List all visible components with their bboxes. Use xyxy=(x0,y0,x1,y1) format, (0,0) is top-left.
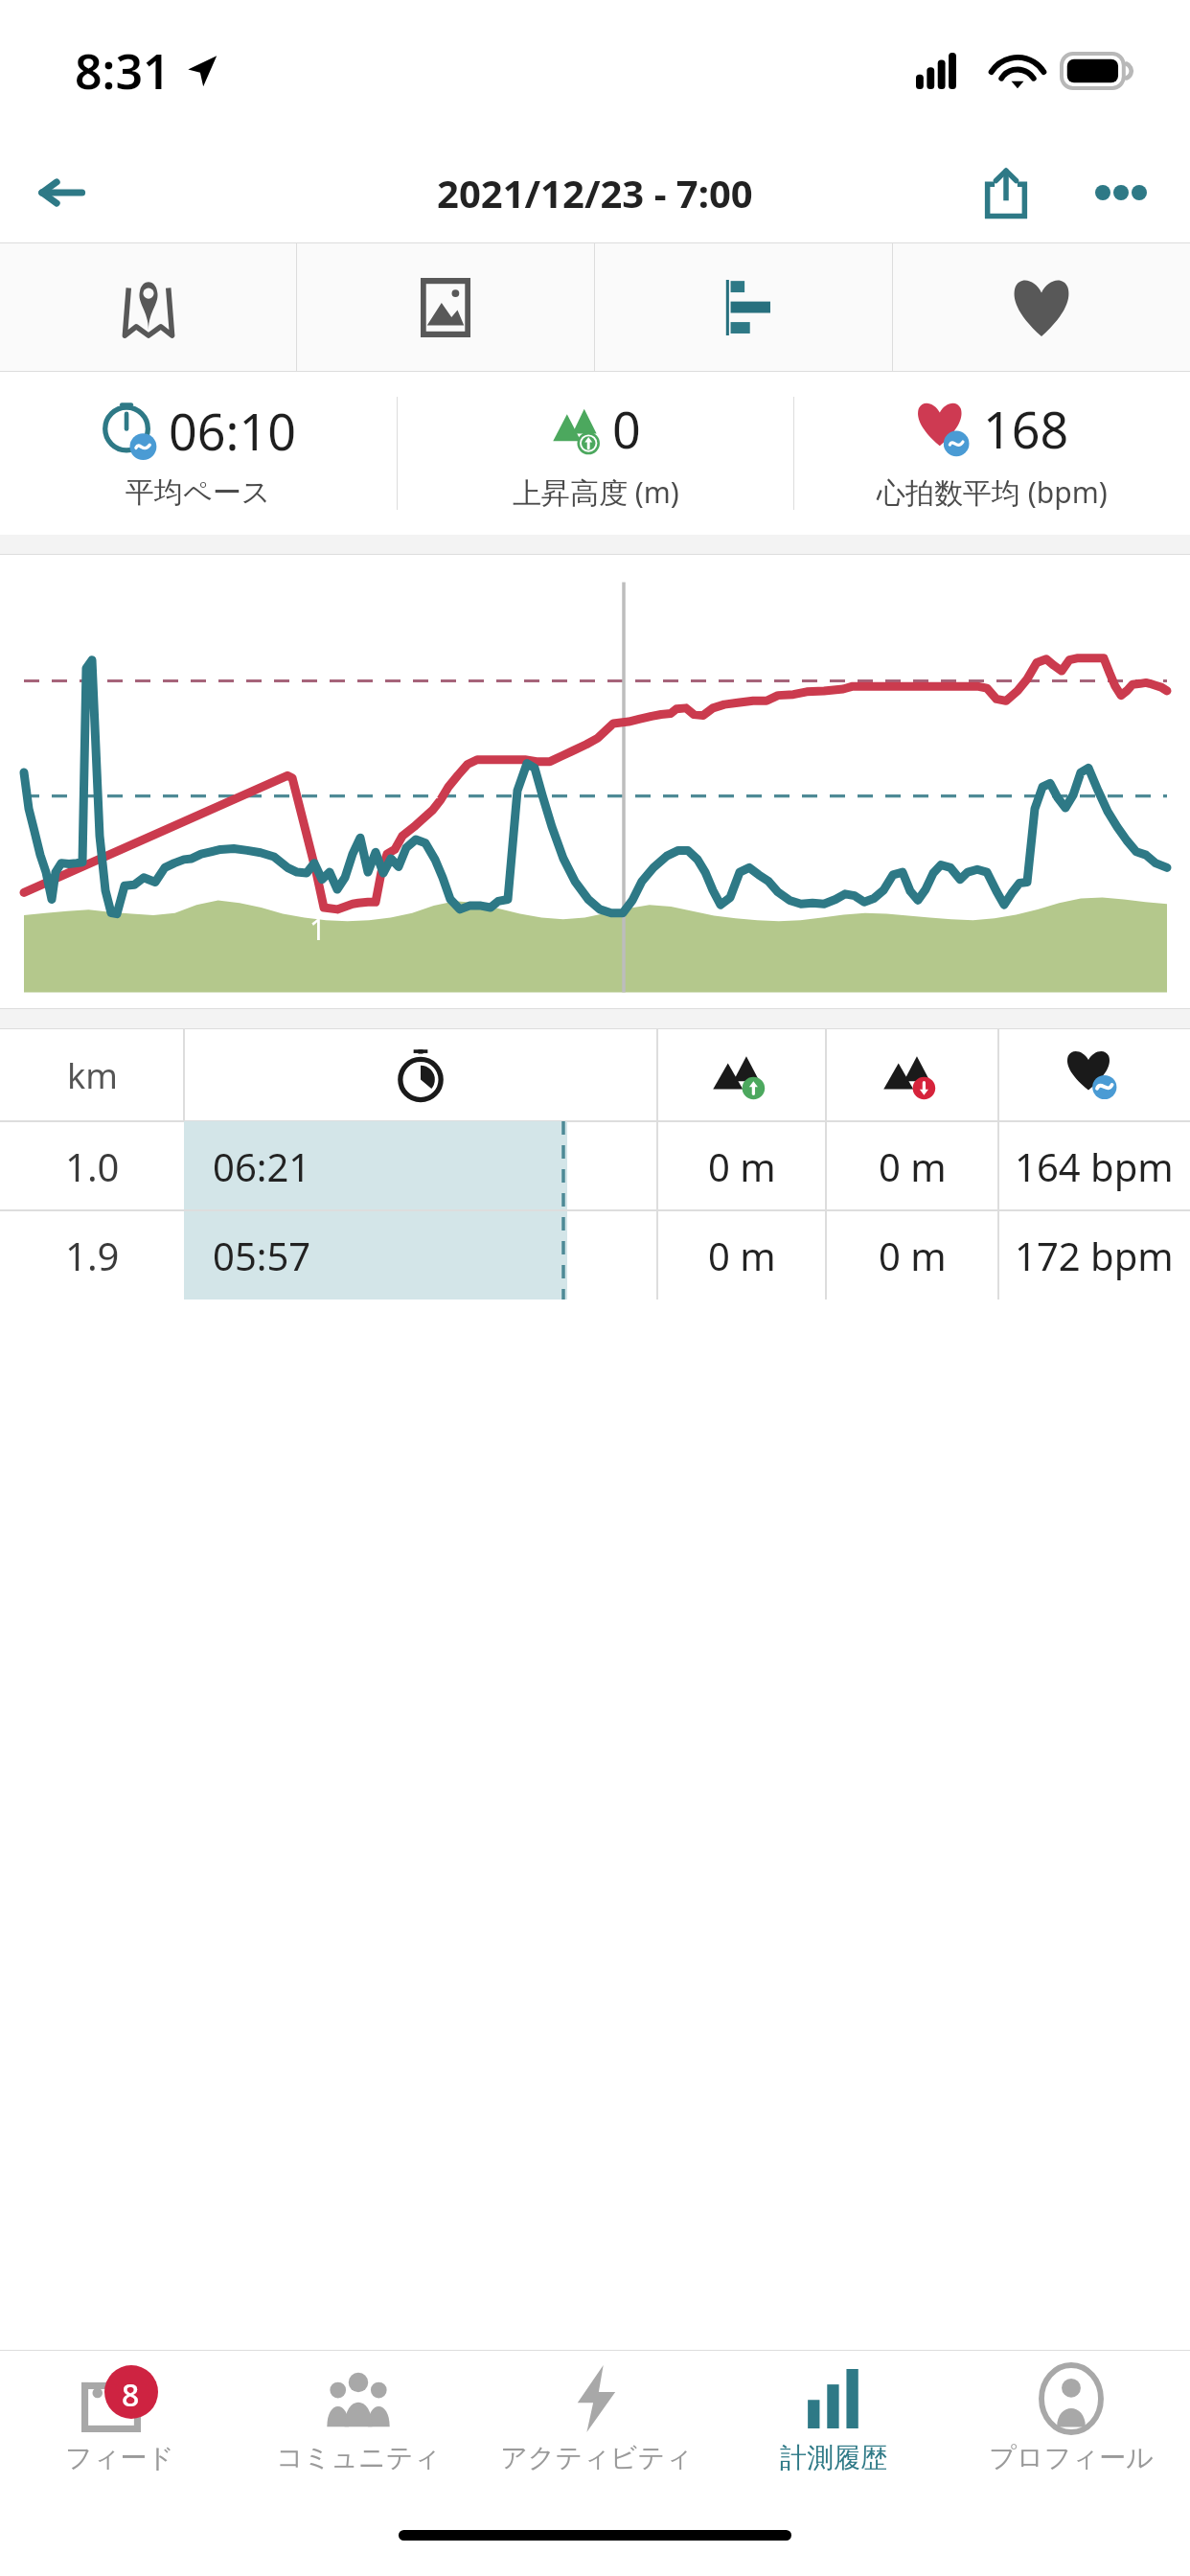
button[interactable]: Photos xyxy=(297,243,594,371)
staticText: 0 m xyxy=(879,1230,947,1281)
staticText: プロフィール xyxy=(989,2441,1154,2474)
staticText: 平均ペース xyxy=(126,474,271,511)
button[interactable]: Heart rate xyxy=(893,243,1190,371)
staticText: 心拍数平均 (bpm) xyxy=(877,472,1108,512)
staticText: 計測履歴 xyxy=(780,2441,887,2474)
button[interactable]: Map xyxy=(0,243,296,371)
staticText: 164 bpm xyxy=(1015,1140,1174,1192)
button[interactable]: 168 xyxy=(794,372,1190,535)
staticText: 2021/12/23 - 7:00 xyxy=(437,167,753,218)
staticText: 1.0 xyxy=(65,1140,120,1192)
button[interactable]: Share xyxy=(960,147,1052,239)
staticText: 8:31 xyxy=(75,38,171,103)
staticText: 05:57 xyxy=(213,1230,311,1281)
staticText: km xyxy=(67,1052,118,1099)
button[interactable]: コミュニティ xyxy=(239,2351,477,2509)
button[interactable]: Back xyxy=(21,152,102,233)
staticText: 06:10 xyxy=(169,397,296,465)
button[interactable]: プロフィール xyxy=(952,2351,1190,2509)
button[interactable]: 1.9 xyxy=(0,1210,1190,1299)
button[interactable]: 0 xyxy=(398,372,793,535)
staticText: 0 m xyxy=(879,1140,947,1192)
staticText: 0 m xyxy=(708,1230,776,1281)
staticText: 上昇高度 (m) xyxy=(513,472,679,512)
button[interactable]: 計測履歴 xyxy=(715,2351,952,2509)
staticText: 172 bpm xyxy=(1015,1230,1174,1281)
staticText: 0 m xyxy=(708,1140,776,1192)
button[interactable]: 8 xyxy=(0,2351,239,2509)
button[interactable]: 1.0 xyxy=(0,1121,1190,1210)
staticText: 8 xyxy=(122,2374,140,2416)
staticText: 1.9 xyxy=(65,1230,120,1281)
button[interactable]: 06:10 xyxy=(0,372,397,535)
button[interactable]: アクティビティ xyxy=(477,2351,715,2509)
staticText: コミュニティ xyxy=(276,2441,441,2474)
staticText: 168 xyxy=(983,395,1069,463)
button[interactable]: Graphs xyxy=(595,243,892,371)
staticText: アクティビティ xyxy=(500,2441,693,2474)
staticText: フィード xyxy=(65,2441,174,2474)
staticText: 0 xyxy=(612,395,641,463)
staticText: 1 xyxy=(309,909,327,949)
button[interactable]: More options xyxy=(1075,147,1167,239)
staticText: 06:21 xyxy=(213,1140,311,1192)
